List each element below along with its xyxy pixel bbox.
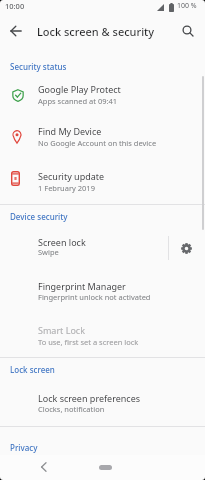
staticText: Security status: [10, 61, 67, 72]
button[interactable]: [95, 458, 116, 476]
staticText: Clocks, notification: [38, 404, 105, 414]
button[interactable]: Screen lock: [0, 226, 167, 269]
button[interactable]: Fingerprint Manager: [0, 270, 205, 313]
staticText: Device security: [10, 211, 68, 222]
button[interactable]: Security update: [0, 158, 205, 201]
button[interactable]: Lock screen preferences: [0, 381, 205, 424]
staticText: Apps scanned at 09:41: [38, 96, 118, 106]
staticText: Lock screen: [10, 364, 55, 375]
button[interactable]: [174, 17, 202, 45]
staticText: Security update: [38, 170, 105, 182]
staticText: To use, first set a screen lock: [38, 337, 139, 347]
staticText: Privacy: [10, 442, 38, 453]
staticText: No Google Account on this device: [38, 138, 157, 148]
button[interactable]: Google Play Protect: [0, 72, 205, 115]
staticText: Screen lock: [38, 236, 86, 248]
button[interactable]: Smart Lock: [0, 313, 205, 356]
button[interactable]: [2, 17, 30, 45]
staticText: Lock screen & security: [37, 24, 155, 39]
button[interactable]: [172, 234, 200, 262]
staticText: Smart Lock: [38, 324, 85, 336]
staticText: 10:00: [5, 1, 25, 11]
staticText: Swipe: [38, 247, 59, 257]
staticText: Find My Device: [38, 125, 102, 137]
button[interactable]: [32, 455, 56, 479]
button[interactable]: Find My Device: [0, 114, 205, 157]
staticText: Fingerprint unlock not activated: [38, 292, 151, 302]
staticText: Lock screen preferences: [38, 392, 141, 404]
staticText: Google Play Protect: [38, 83, 121, 95]
staticText: Fingerprint Manager: [38, 280, 126, 292]
staticText: 100 %: [177, 1, 197, 11]
staticText: 1 February 2019: [38, 183, 95, 193]
